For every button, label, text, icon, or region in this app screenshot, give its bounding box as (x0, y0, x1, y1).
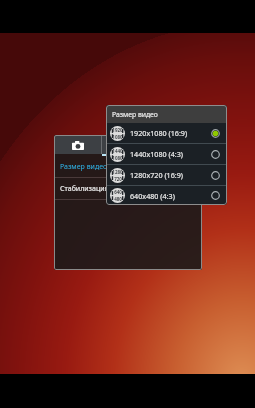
staticText: 1440x1080 (4:3) (130, 149, 184, 159)
button[interactable]: Camera settings (54, 135, 101, 154)
button[interactable]: 1440 (106, 144, 227, 164)
staticText: Стабилизация (60, 184, 109, 194)
staticText: Размер видео (112, 110, 158, 119)
staticText: 1920x1080 (16:9) (130, 128, 188, 138)
staticText: 640 (114, 189, 122, 195)
staticText: 480 (114, 196, 122, 202)
button[interactable]: 1280 (106, 165, 227, 185)
button[interactable]: Стабилизация (54, 178, 202, 199)
staticText: 1280 (112, 169, 123, 175)
staticText: 1080 (112, 134, 123, 140)
staticText: 1920 (112, 127, 123, 133)
staticText: 1440 (112, 148, 123, 154)
button[interactable]: Размер видео (54, 156, 202, 177)
staticText: 1080 (112, 155, 123, 161)
button[interactable]: Video settings (102, 135, 202, 154)
button[interactable]: 640 (106, 186, 227, 205)
staticText: Размер видео (60, 162, 108, 172)
staticText: 1280x720 (16:9) (130, 170, 184, 180)
staticText: 640x480 (4:3) (130, 191, 175, 201)
staticText: 720 (114, 176, 122, 182)
button[interactable]: 1920 (106, 123, 227, 143)
